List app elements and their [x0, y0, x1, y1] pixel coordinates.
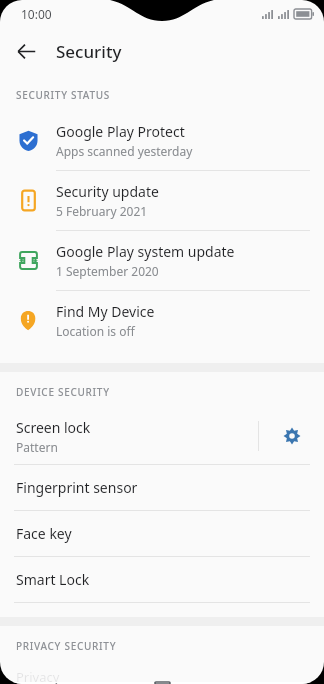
- button[interactable]: Recent apps: [216, 682, 324, 684]
- staticText: PRIVACY SECURITY: [16, 639, 117, 653]
- staticText: Google Play Protect: [56, 122, 185, 141]
- staticText: Apps scanned yesterday: [56, 143, 193, 159]
- staticText: Location is off: [56, 323, 135, 339]
- staticText: Smart Lock: [16, 570, 90, 589]
- button[interactable]: Screen lock settings: [259, 408, 324, 464]
- button[interactable]: Screen lock: [0, 408, 258, 464]
- staticText: Find My Device: [56, 302, 155, 321]
- staticText: 10:00: [21, 6, 52, 22]
- button[interactable]: Back: [8, 33, 44, 69]
- staticText: Face key: [16, 524, 72, 543]
- staticText: Security: [56, 40, 122, 63]
- staticText: Screen lock: [16, 418, 91, 437]
- staticText: 5 February 2021: [56, 203, 148, 219]
- staticText: Privacy: [16, 668, 60, 682]
- button[interactable]: Google Play system update: [0, 231, 324, 291]
- button[interactable]: Find My Device: [0, 291, 324, 350]
- button[interactable]: Fingerprint sensor: [0, 465, 324, 511]
- button[interactable]: Face key: [0, 511, 324, 557]
- staticText: Pattern: [16, 439, 58, 455]
- staticText: SECURITY STATUS: [16, 88, 110, 102]
- button[interactable]: Security update: [0, 171, 324, 231]
- staticText: 1 September 2020: [56, 263, 159, 279]
- button[interactable]: Back: [0, 682, 108, 684]
- staticText: Security update: [56, 182, 159, 201]
- staticText: Google Play system update: [56, 242, 235, 261]
- button[interactable]: Smart Lock: [0, 557, 324, 603]
- button[interactable]: Home: [108, 682, 216, 684]
- button[interactable]: Google Play Protect: [0, 111, 324, 171]
- staticText: DEVICE SECURITY: [16, 385, 110, 399]
- staticText: Fingerprint sensor: [16, 478, 138, 497]
